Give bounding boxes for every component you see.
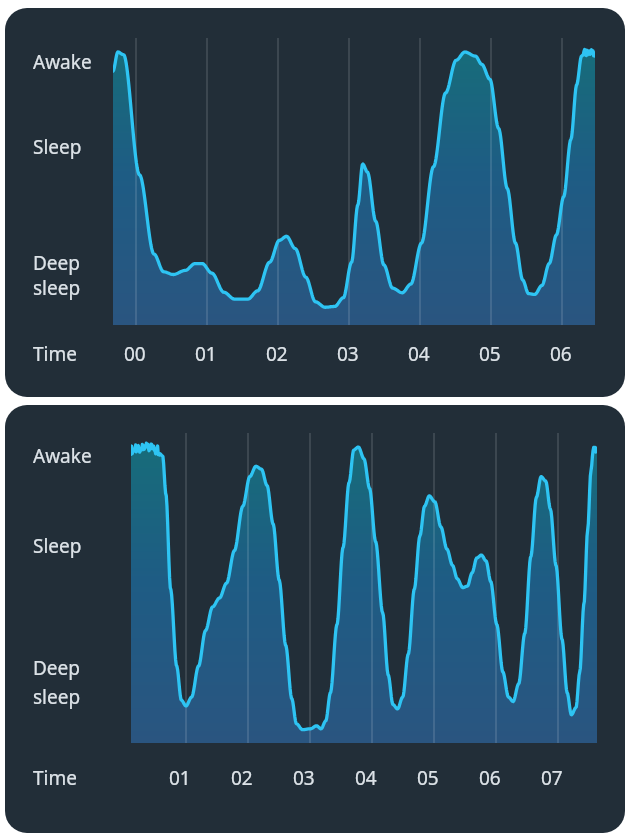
staticText: Deep — [33, 655, 80, 681]
staticText: 01 — [169, 765, 191, 791]
staticText: 04 — [408, 341, 430, 367]
staticText: 04 — [355, 765, 377, 791]
staticText: 03 — [293, 765, 315, 791]
staticText: 00 — [124, 341, 146, 367]
staticText: 07 — [541, 765, 563, 791]
button[interactable]: Awake — [5, 405, 625, 833]
staticText: Time — [33, 341, 77, 367]
staticText: sleep — [33, 275, 81, 301]
staticText: 02 — [266, 341, 288, 367]
staticText: 03 — [337, 341, 359, 367]
staticText: Sleep — [33, 533, 82, 559]
staticText: 05 — [417, 765, 439, 791]
staticText: Time — [33, 765, 77, 791]
staticText: sleep — [33, 684, 81, 710]
staticText: 06 — [479, 765, 501, 791]
button[interactable]: Awake — [5, 8, 625, 397]
staticText: Awake — [33, 49, 92, 75]
staticText: Sleep — [33, 134, 82, 160]
staticText: 02 — [231, 765, 253, 791]
staticText: 05 — [479, 341, 501, 367]
staticText: Awake — [33, 443, 92, 469]
staticText: Deep — [33, 250, 80, 276]
staticText: 01 — [195, 341, 217, 367]
staticText: 06 — [550, 341, 572, 367]
